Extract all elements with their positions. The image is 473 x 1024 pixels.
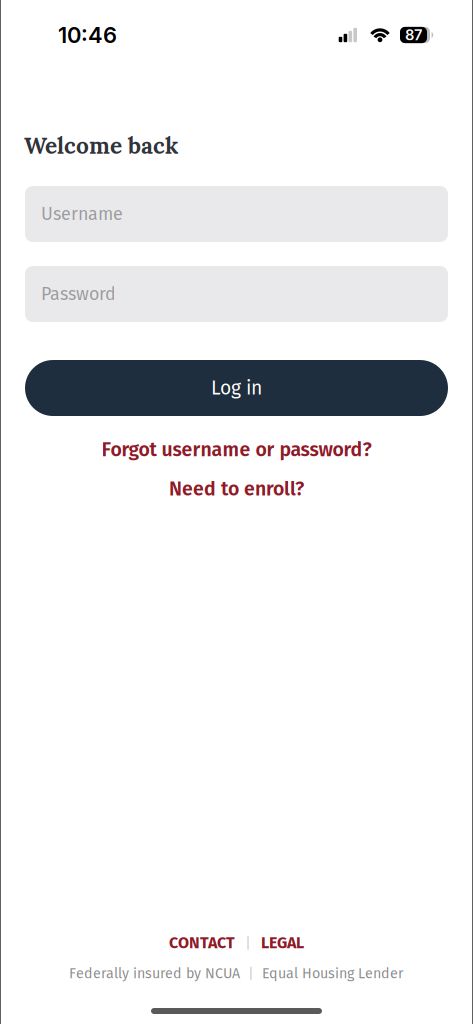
staticText: Username — [41, 203, 123, 225]
button[interactable]: Username — [25, 186, 448, 242]
staticText: Welcome back — [24, 131, 178, 160]
staticText: CONTACT — [169, 933, 235, 952]
staticText: Federally insured by NCUA — [69, 965, 240, 982]
staticText: Equal Housing Lender — [262, 965, 404, 982]
staticText: Password — [41, 283, 116, 305]
staticText: LEGAL — [261, 933, 304, 952]
staticText: Forgot username or password? — [101, 438, 371, 461]
button[interactable]: Forgot username or password? — [101, 438, 371, 461]
staticText: 10:46 — [58, 22, 117, 48]
staticText: Log in — [211, 376, 262, 400]
button[interactable]: LEGAL — [261, 933, 304, 952]
button[interactable]: Need to enroll? — [169, 477, 304, 501]
staticText: | — [245, 934, 251, 952]
button[interactable]: CONTACT — [169, 933, 235, 952]
button[interactable]: Log in — [25, 360, 448, 416]
staticText: 87 — [405, 26, 422, 44]
staticText: Need to enroll? — [169, 477, 304, 501]
button[interactable]: Password — [25, 266, 448, 322]
staticText: | — [248, 965, 254, 982]
